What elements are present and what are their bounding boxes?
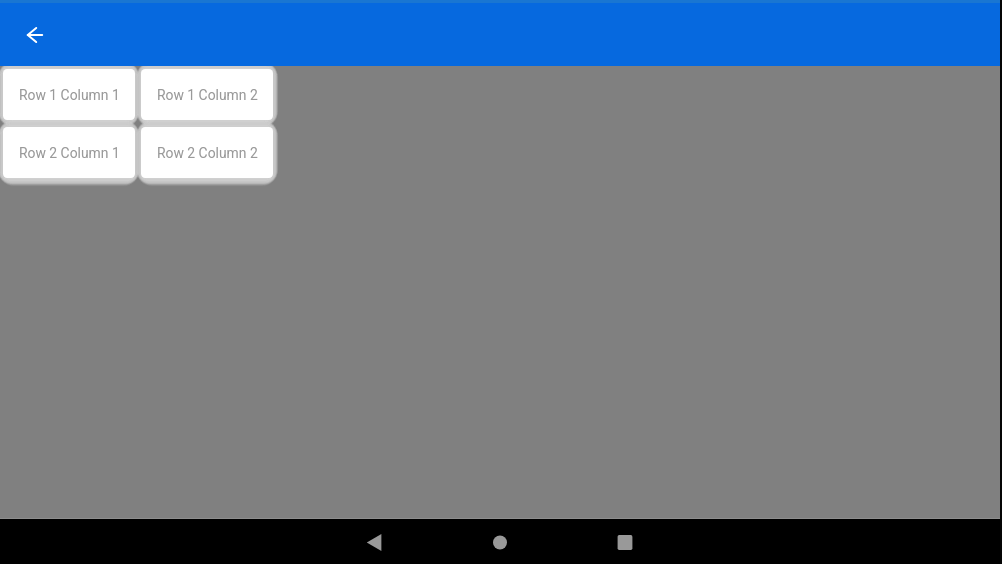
staticText: Row 1 Column 1 bbox=[19, 87, 120, 103]
button[interactable]: Row 2 Column 1 bbox=[3, 127, 135, 178]
staticText: Row 2 Column 1 bbox=[19, 145, 120, 161]
button[interactable]: Back bbox=[350, 520, 398, 564]
button[interactable]: Navigate up bbox=[12, 12, 58, 58]
staticText: Row 1 Column 2 bbox=[157, 87, 258, 103]
button[interactable]: Row 1 Column 1 bbox=[3, 69, 135, 120]
button[interactable]: Recent apps bbox=[601, 520, 649, 564]
staticText: Row 2 Column 2 bbox=[157, 145, 258, 161]
button[interactable]: Row 1 Column 2 bbox=[141, 69, 273, 120]
button[interactable]: Home bbox=[476, 520, 524, 564]
button[interactable]: Row 2 Column 2 bbox=[141, 127, 273, 178]
